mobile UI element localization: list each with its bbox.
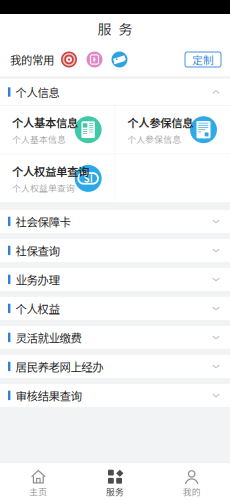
staticText: 社会保障卡 — [15, 213, 70, 230]
button[interactable]: 我的 — [153, 463, 230, 500]
button[interactable]: SI — [0, 154, 115, 202]
staticText: 业务办理 — [15, 271, 59, 288]
button[interactable]: 个人权益 — [0, 297, 230, 320]
staticText: 灵活就业缴费 — [15, 329, 81, 346]
button[interactable]: 社会保障卡 — [0, 210, 230, 233]
staticText: 服 务 — [97, 18, 132, 39]
button[interactable]: 社保查询 — [0, 239, 230, 262]
button[interactable]: 业务办理 — [0, 268, 230, 291]
staticText: 服务 — [106, 485, 124, 498]
staticText: 居民养老网上经办 — [15, 358, 103, 375]
staticText: 个人基本信息 — [12, 132, 66, 145]
staticText: 社保查询 — [15, 242, 59, 259]
staticText: SI — [84, 172, 93, 185]
staticText: 我的常用 — [10, 51, 54, 68]
staticText: 个人基本信息 — [12, 114, 78, 130]
button[interactable]: 个人基本信息 — [0, 106, 115, 154]
staticText: 审核结果查询 — [15, 387, 81, 404]
staticText: 个人权益单查询 — [12, 163, 89, 179]
staticText: 定制 — [192, 52, 214, 67]
button[interactable]: 个人参保信息 — [115, 106, 230, 154]
staticText: 主页 — [29, 485, 47, 498]
staticText: 个人参保信息 — [127, 132, 181, 145]
staticText: 我的 — [183, 485, 201, 498]
button[interactable]: 灵活就业缴费 — [0, 326, 230, 349]
button[interactable]: 主页 — [0, 463, 77, 500]
staticText: 个人权益单查询 — [12, 181, 75, 194]
button[interactable]: 定制 — [185, 52, 221, 67]
staticText: 个人权益 — [15, 300, 59, 317]
button[interactable]: 居民养老网上经办 — [0, 355, 230, 378]
staticText: 个人参保信息 — [127, 114, 193, 130]
button[interactable]: 服务 — [77, 463, 153, 500]
button[interactable]: 审核结果查询 — [0, 384, 230, 407]
staticText: 个人信息 — [15, 84, 59, 100]
